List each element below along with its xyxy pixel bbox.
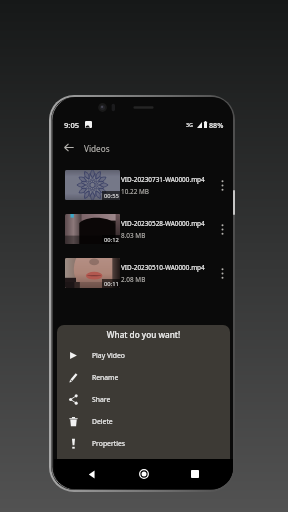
staticText: 00:55 xyxy=(104,192,119,200)
button[interactable]: More options xyxy=(214,258,230,288)
button[interactable]: Properties xyxy=(57,432,230,454)
button[interactable]: 00:11 xyxy=(54,251,233,295)
staticText: 10.22 MB xyxy=(121,187,149,196)
staticText: 2.08 MB xyxy=(121,275,146,284)
staticText: VID-20230731-WA0000.mp4 xyxy=(121,175,205,184)
staticText: Rename xyxy=(92,373,119,382)
staticText: VID-20230510-WA0000.mp4 xyxy=(121,263,205,272)
staticText: 00:12 xyxy=(104,236,119,244)
button[interactable]: 00:12 xyxy=(54,207,233,251)
button[interactable]: Play Video xyxy=(57,344,230,366)
button[interactable]: Recents xyxy=(182,461,208,487)
staticText: 3G xyxy=(186,121,194,128)
staticText: Videos xyxy=(84,143,110,154)
staticText: What do you want! xyxy=(57,329,230,340)
staticText: 9:05 xyxy=(64,120,80,130)
button[interactable]: Share xyxy=(57,388,230,410)
button[interactable]: Home xyxy=(131,461,157,487)
button[interactable]: More options xyxy=(214,170,230,200)
button[interactable]: Delete xyxy=(57,410,230,432)
staticText: 88% xyxy=(209,120,224,130)
staticText: VID-20230528-WA0000.mp4 xyxy=(121,219,205,228)
button[interactable]: Rename xyxy=(57,366,230,388)
staticText: Play Video xyxy=(92,351,125,360)
button[interactable]: Back xyxy=(57,135,81,159)
staticText: Delete xyxy=(92,417,113,426)
button[interactable]: More options xyxy=(214,214,230,244)
button[interactable]: 00:55 xyxy=(54,163,233,207)
button[interactable]: Back xyxy=(79,461,105,487)
staticText: 00:11 xyxy=(104,280,119,288)
staticText: Properties xyxy=(92,439,126,448)
staticText: 8.03 MB xyxy=(121,231,146,240)
staticText: Share xyxy=(92,395,111,404)
